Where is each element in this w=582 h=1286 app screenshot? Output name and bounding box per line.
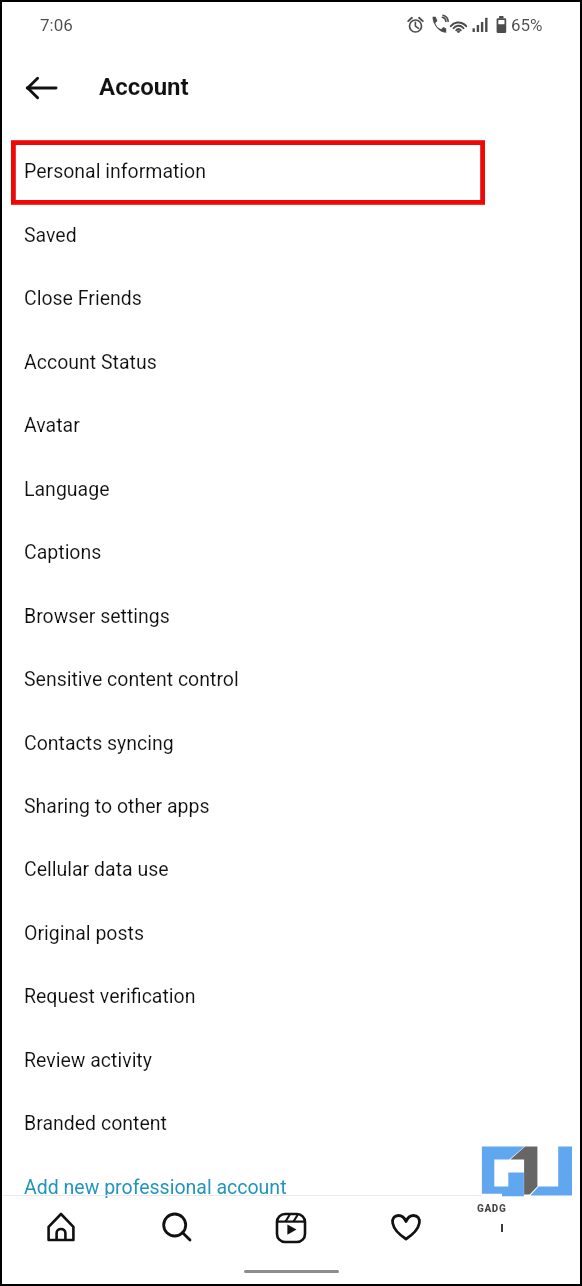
button[interactable]: Home	[35, 1201, 87, 1253]
button[interactable]: Add new professional account	[2, 1156, 580, 1219]
button[interactable]: Account Status	[2, 331, 580, 394]
staticText: Request verification	[24, 985, 196, 1008]
staticText: Language	[24, 478, 110, 501]
staticText: Account Status	[24, 351, 157, 374]
button[interactable]: Sensitive content control	[2, 648, 580, 711]
staticText: Close Friends	[24, 287, 142, 310]
staticText: Browser settings	[24, 605, 170, 628]
button[interactable]: Branded content	[2, 1092, 580, 1155]
staticText: Avatar	[24, 414, 80, 437]
button[interactable]: Contacts syncing	[2, 712, 580, 775]
button[interactable]: Personal information	[2, 140, 580, 203]
button[interactable]: Back	[16, 62, 68, 114]
button[interactable]: Request verification	[2, 965, 580, 1028]
staticText: 65%	[511, 15, 543, 35]
button[interactable]: Captions	[2, 521, 580, 584]
staticText: 7:06	[40, 15, 73, 35]
staticText: Contacts syncing	[24, 732, 174, 755]
staticText: Saved	[24, 224, 77, 247]
button[interactable]: Close Friends	[2, 267, 580, 330]
button[interactable]: Saved	[2, 204, 580, 267]
staticText: Branded content	[24, 1112, 167, 1135]
staticText: GADG	[477, 1203, 507, 1215]
button[interactable]: Avatar	[2, 394, 580, 457]
button[interactable]: Original posts	[2, 902, 580, 965]
staticText: Account	[99, 73, 189, 101]
button[interactable]: Cellular data use	[2, 838, 580, 901]
button[interactable]: Search	[150, 1201, 202, 1253]
button[interactable]: Profile	[495, 1201, 547, 1253]
staticText: Original posts	[24, 922, 144, 945]
staticText: Captions	[24, 541, 102, 564]
button[interactable]: Language	[2, 458, 580, 521]
staticText: Cellular data use	[24, 858, 169, 881]
button[interactable]: Sharing to other apps	[2, 775, 580, 838]
staticText: Sharing to other apps	[24, 795, 210, 818]
staticText: Add new professional account	[24, 1176, 287, 1199]
button[interactable]: Likes	[380, 1201, 432, 1253]
button[interactable]: Reels	[265, 1202, 317, 1254]
button[interactable]: Review activity	[2, 1029, 580, 1092]
button[interactable]: Browser settings	[2, 585, 580, 648]
staticText: Review activity	[24, 1049, 152, 1072]
staticText: Personal information	[24, 160, 207, 183]
staticText: Sensitive content control	[24, 668, 239, 691]
